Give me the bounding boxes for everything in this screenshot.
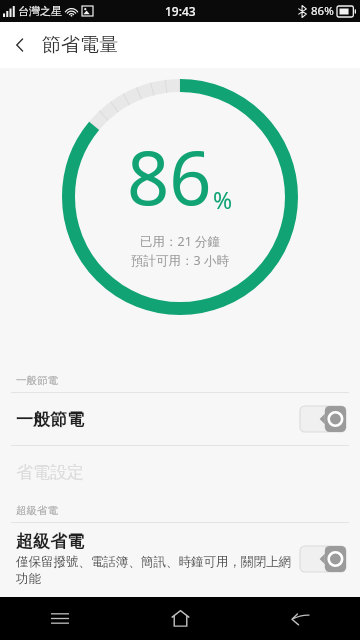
- staticText: 超級省電: [16, 531, 84, 552]
- staticText: 一般節電: [16, 409, 84, 430]
- staticText: 節省電量: [42, 33, 118, 57]
- button[interactable]: Toggle: [300, 546, 346, 572]
- button[interactable]: Recents: [0, 597, 120, 640]
- button[interactable]: Back: [240, 597, 360, 640]
- staticText: 僅保留撥號、電話簿、簡訊、時鐘可用，關閉上網功能: [16, 554, 292, 586]
- staticText: 已用：21 分鐘: [140, 233, 221, 250]
- staticText: 省電設定: [16, 462, 84, 483]
- button[interactable]: Back: [0, 25, 40, 65]
- staticText: 台灣之星: [18, 4, 62, 18]
- staticText: 19:43: [165, 3, 196, 19]
- staticText: 預計可用：3 小時: [131, 252, 229, 269]
- button[interactable]: 省電設定: [0, 446, 360, 498]
- staticText: %: [213, 184, 233, 215]
- button[interactable]: Toggle: [300, 406, 346, 432]
- button[interactable]: 超級省電: [0, 523, 360, 594]
- staticText: 一般節電: [16, 374, 58, 387]
- button[interactable]: 一般節電: [0, 393, 360, 445]
- staticText: 86%: [311, 3, 334, 19]
- button[interactable]: Home: [120, 597, 240, 640]
- staticText: 86: [127, 126, 212, 227]
- staticText: 超級省電: [16, 504, 58, 517]
